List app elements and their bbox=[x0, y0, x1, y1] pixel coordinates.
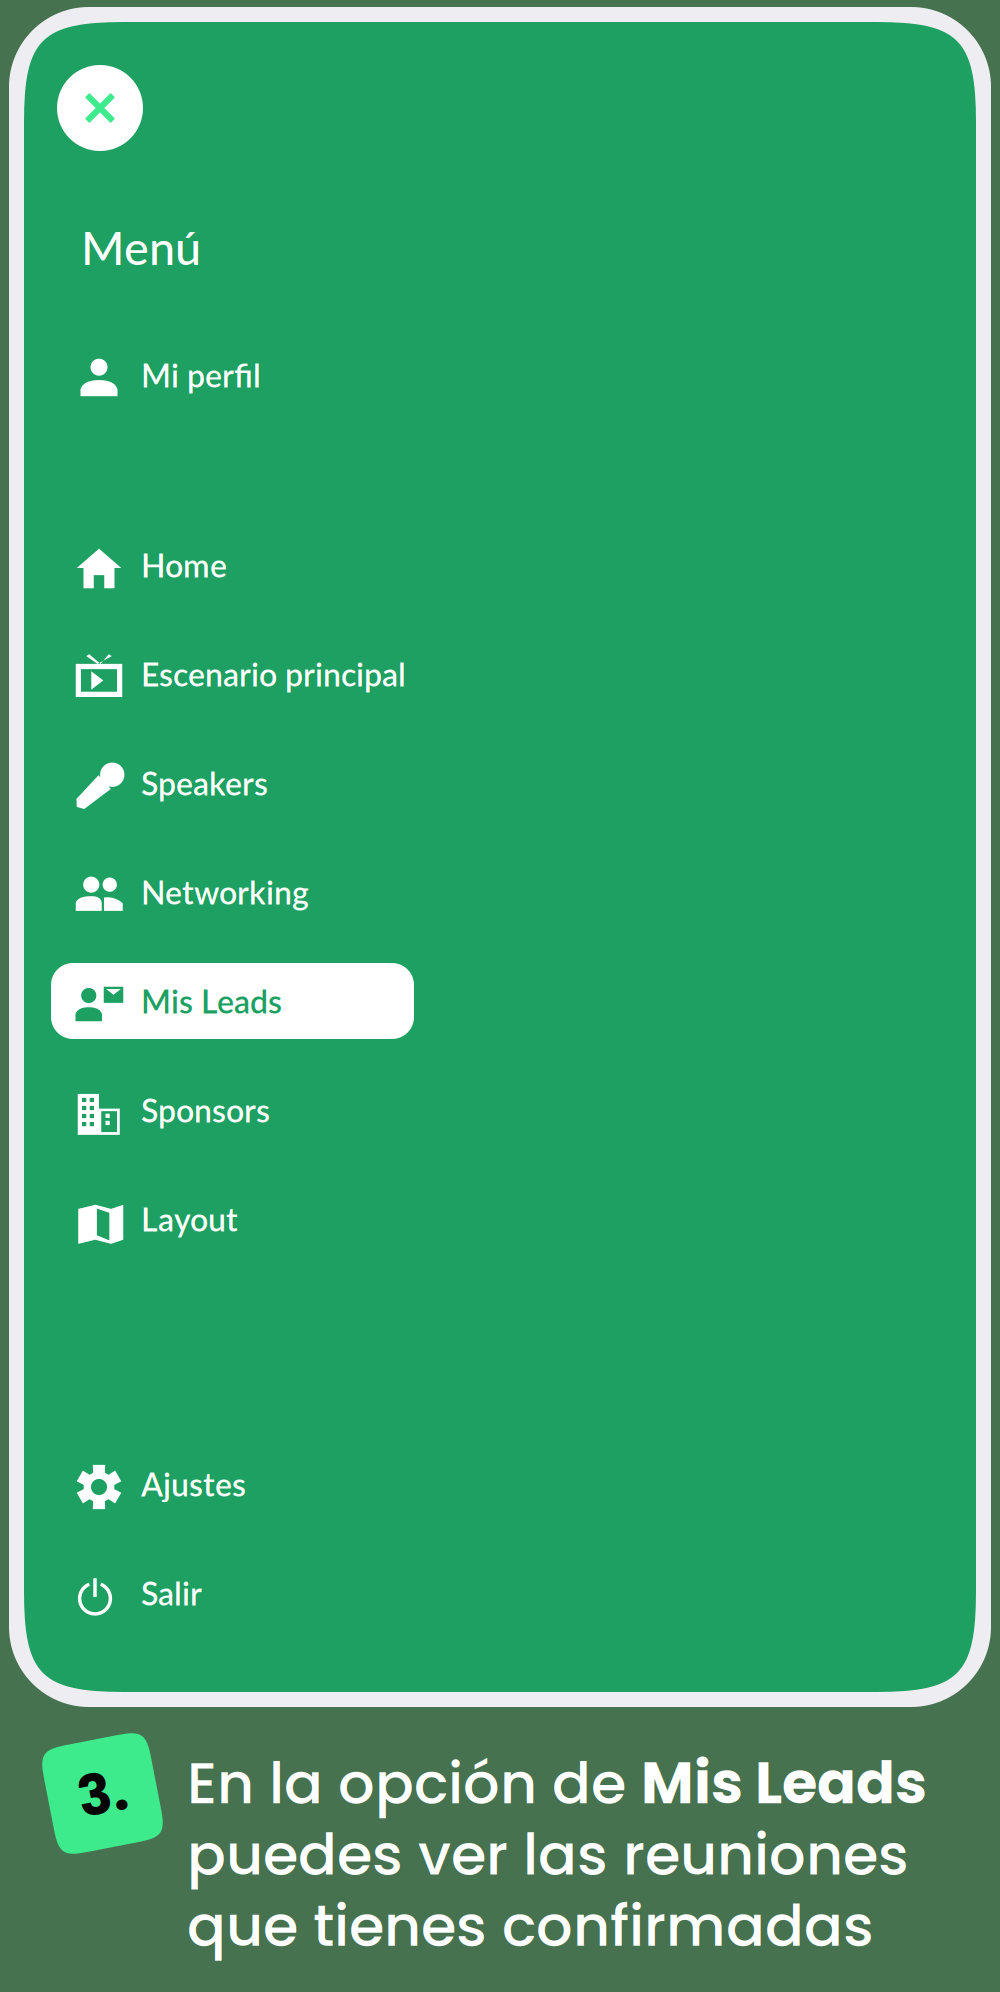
button[interactable]: Sponsors bbox=[51, 1072, 491, 1148]
button[interactable]: Escenario principal bbox=[51, 636, 491, 712]
button[interactable]: Home bbox=[51, 527, 491, 603]
staticText: Mis Leads bbox=[141, 982, 282, 1020]
staticText: Salir bbox=[141, 1574, 202, 1612]
button[interactable]: Networking bbox=[51, 854, 491, 930]
staticText: Home bbox=[141, 546, 227, 584]
button[interactable]: Speakers bbox=[51, 745, 491, 821]
button[interactable]: Mi perfil bbox=[51, 337, 491, 413]
staticText: Mi perfil bbox=[141, 356, 261, 394]
button[interactable]: Ajustes bbox=[51, 1446, 491, 1522]
staticText: Speakers bbox=[141, 764, 268, 802]
staticText: Networking bbox=[141, 873, 309, 911]
button[interactable]: Cerrar menú bbox=[57, 65, 143, 151]
button[interactable]: Salir bbox=[51, 1555, 491, 1631]
staticText: Sponsors bbox=[141, 1091, 270, 1129]
staticText: Layout bbox=[141, 1200, 238, 1238]
staticText: 3. bbox=[77, 1754, 127, 1833]
staticText: Menú bbox=[81, 219, 201, 275]
staticText: Escenario principal bbox=[141, 655, 406, 693]
staticText: Ajustes bbox=[141, 1465, 246, 1503]
button[interactable]: Mis Leads bbox=[51, 963, 414, 1039]
button[interactable]: Layout bbox=[51, 1181, 491, 1257]
staticText: En la opción de Mis Leads puedes ver las… bbox=[187, 1744, 927, 1965]
